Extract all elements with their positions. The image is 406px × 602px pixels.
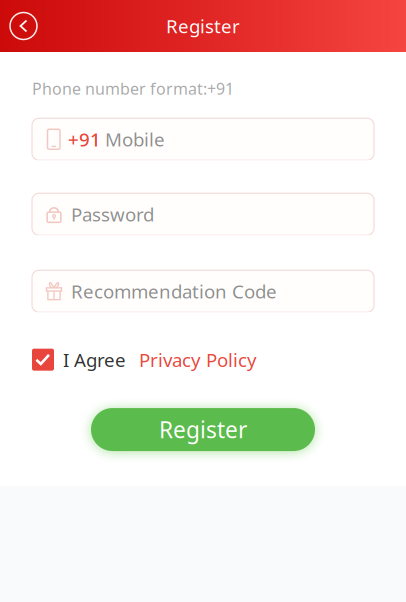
button[interactable]: Back [0,0,45,52]
button[interactable]: Password [32,193,374,235]
staticText: Password [71,202,154,227]
staticText: Register [159,414,247,445]
button[interactable]: Register [91,408,315,451]
button[interactable]: Recommendation Code [32,270,374,312]
staticText: Phone number format:+91 [32,78,234,99]
staticText: Mobile [105,127,165,152]
staticText: Recommendation Code [71,279,277,304]
staticText: Privacy Policy [139,347,257,372]
staticText: +91 [68,127,101,152]
staticText: Register [166,14,240,38]
button[interactable]: +91 [32,118,374,160]
button[interactable]: I Agree [32,344,126,375]
staticText: I Agree [63,347,126,372]
button[interactable]: Privacy Policy [126,344,257,375]
